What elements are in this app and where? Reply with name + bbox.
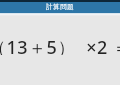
staticText: 計算問題 — [46, 3, 75, 11]
button[interactable]: 計算問題 — [0, 2, 120, 13]
staticText: （13＋5） ×2 ＝ — [0, 35, 120, 55]
